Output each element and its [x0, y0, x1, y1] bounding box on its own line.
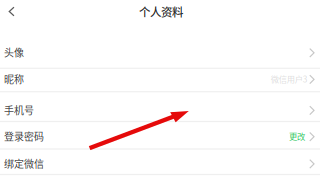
button[interactable]: Back	[0, 0, 25, 23]
button[interactable]: 绑定微信	[0, 151, 320, 176]
staticText: 手机号	[4, 103, 34, 117]
staticText: 绑定微信	[4, 156, 44, 171]
staticText: 登录密码	[4, 129, 44, 143]
button[interactable]: 昵称	[0, 67, 320, 90]
staticText: 头像	[4, 45, 24, 59]
staticText: 更改	[289, 130, 305, 142]
button[interactable]: 头像	[0, 37, 320, 68]
button[interactable]: 登录密码	[0, 122, 320, 150]
staticText: 个人资料	[139, 3, 183, 20]
staticText: 昵称	[4, 72, 24, 86]
button[interactable]: 手机号	[0, 95, 320, 125]
staticText: 微信用户3	[271, 73, 308, 85]
